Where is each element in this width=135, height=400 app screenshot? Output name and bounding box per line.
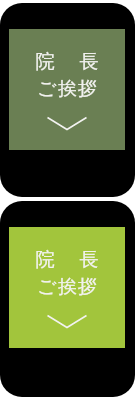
button[interactable]: 院長ご挨拶 [9,29,125,150]
staticText: ご挨拶 [37,77,98,101]
staticText: ご挨拶 [37,275,98,299]
button[interactable]: 院長ご挨拶 [9,227,125,348]
staticText: 院 長 [34,246,100,272]
staticText: 院 長 [34,48,100,74]
